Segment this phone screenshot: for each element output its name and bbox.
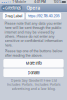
staticText: Please tap one of the buttons below afte… [4, 49, 62, 57]
staticText: T-Mobile [11, 0, 26, 4]
button[interactable]: Donate [3, 68, 64, 77]
staticText: 100% [54, 0, 62, 4]
staticText: •••∘∘ [1, 0, 11, 4]
staticText: https://92.118.40.205 [27, 14, 59, 18]
button[interactable]: More Info [3, 59, 64, 67]
staticText: ◂ [2, 6, 4, 10]
staticText: Greetings [5, 6, 21, 10]
staticText: Drag Label [5, 14, 23, 18]
staticText: Donate [27, 70, 39, 75]
staticText: More Info [25, 61, 41, 66]
staticText: Opera Say Goodwill Free Ltd Includes Por… [6, 79, 60, 91]
staticText: Opera [26, 5, 40, 11]
button[interactable]: ◂ [1, 5, 22, 11]
staticText: Please note that any data you enter here… [4, 21, 62, 47]
staticText: 4:01 PM [34, 0, 46, 4]
